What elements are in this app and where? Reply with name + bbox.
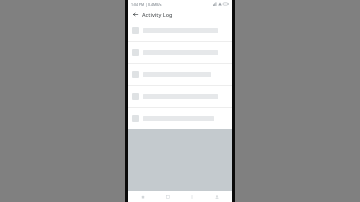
button[interactable] — [128, 20, 232, 41]
button[interactable] — [128, 86, 232, 107]
button[interactable]: Profile — [208, 191, 226, 202]
button[interactable] — [128, 42, 232, 63]
button[interactable]: Back — [131, 10, 140, 19]
staticText: Activity Log — [142, 11, 173, 18]
button[interactable]: Dashboard — [159, 191, 177, 202]
button[interactable]: Home — [134, 191, 152, 202]
staticText: 1:04 PM | 0.4MB/s — [131, 2, 162, 7]
button[interactable] — [128, 108, 232, 129]
button[interactable] — [128, 64, 232, 85]
